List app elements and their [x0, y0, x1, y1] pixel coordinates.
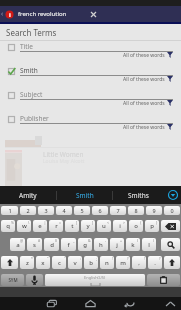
- staticText: ‹: [1, 9, 4, 19]
- button[interactable]: c: [52, 256, 66, 269]
- button[interactable]: t: [65, 220, 79, 232]
- staticText: #: [38, 238, 41, 243]
- staticText: =: [59, 220, 62, 225]
- staticText: All of these words: [123, 100, 165, 107]
- button[interactable]: More suggestions: [164, 186, 181, 204]
- button[interactable]: Publisher: [0, 114, 181, 124]
- staticText: +: [120, 238, 123, 243]
- staticText: ,: [138, 259, 140, 267]
- button[interactable]: w: [17, 220, 31, 232]
- button[interactable]: back: [161, 220, 180, 232]
- button[interactable]: shift: [1, 256, 18, 269]
- staticText: 0: [170, 207, 174, 214]
- button[interactable]: v: [68, 256, 82, 269]
- button[interactable]: r: [49, 220, 63, 232]
- button[interactable]: p: [145, 220, 159, 232]
- button[interactable]: k: [126, 238, 140, 251]
- staticText: ;: [96, 256, 97, 261]
- staticText: w: [22, 222, 27, 230]
- staticText: french revolution: [18, 10, 67, 18]
- button[interactable]: x: [36, 256, 50, 269]
- staticText: All of these words: [123, 76, 165, 83]
- staticText: v: [73, 259, 77, 267]
- button[interactable]: z: [20, 256, 34, 269]
- staticText: \: [28, 220, 30, 225]
- staticText: Title: [20, 42, 33, 51]
- button[interactable]: Hide keyboard: [159, 297, 181, 310]
- button[interactable]: h: [94, 238, 108, 251]
- button[interactable]: All of these words: [0, 124, 181, 138]
- button[interactable]: b: [84, 256, 98, 269]
- button[interactable]: u: [97, 220, 111, 232]
- staticText: b: [89, 259, 93, 267]
- staticText: k: [131, 241, 135, 249]
- button[interactable]: Title: [0, 42, 181, 52]
- button[interactable]: paste: [147, 274, 180, 286]
- button[interactable]: Amity: [0, 186, 56, 204]
- button[interactable]: y: [81, 220, 95, 232]
- button[interactable]: 5: [74, 206, 90, 215]
- button[interactable]: Home: [71, 297, 110, 310]
- button[interactable]: m: [116, 256, 130, 269]
- staticText: All of these words: [123, 52, 165, 59]
- button[interactable]: g: [78, 238, 92, 251]
- staticText: y: [86, 222, 90, 230]
- button[interactable]: 0: [164, 206, 180, 215]
- staticText: ?: [159, 256, 161, 261]
- button[interactable]: d: [44, 238, 59, 251]
- staticText: Little Women: [43, 150, 84, 159]
- button[interactable]: e: [33, 220, 47, 232]
- button[interactable]: f: [61, 238, 76, 251]
- staticText: 6: [98, 207, 102, 214]
- button[interactable]: 6: [92, 206, 108, 215]
- staticText: r: [55, 222, 58, 230]
- button[interactable]: 2: [20, 206, 36, 215]
- button[interactable]: 1: [1, 206, 18, 215]
- button[interactable]: j: [110, 238, 124, 251]
- button[interactable]: Info: [5, 10, 14, 19]
- staticText: $: [55, 238, 58, 243]
- button[interactable]: All of these words: [0, 76, 181, 90]
- button[interactable]: All of these words: [0, 52, 181, 66]
- button[interactable]: 3: [38, 206, 54, 215]
- staticText: Smiths: [128, 191, 149, 200]
- button[interactable]: .: [148, 256, 162, 269]
- button[interactable]: Smith: [57, 186, 112, 204]
- button[interactable]: a: [10, 238, 25, 251]
- staticText: f: [67, 241, 70, 249]
- staticText: 8: [134, 207, 138, 214]
- staticText: Smith: [20, 66, 38, 75]
- staticText: l: [148, 241, 150, 249]
- staticText: d: [50, 241, 54, 249]
- staticText: z: [26, 259, 29, 267]
- button[interactable]: shift: [164, 256, 180, 269]
- button[interactable]: q: [1, 220, 15, 232]
- button[interactable]: Subject: [0, 90, 181, 100]
- button[interactable]: mic: [26, 274, 43, 286]
- button[interactable]: Smiths: [113, 186, 164, 204]
- button[interactable]: Smith: [0, 66, 181, 76]
- button[interactable]: ,: [132, 256, 146, 269]
- button[interactable]: 7: [110, 206, 126, 215]
- button[interactable]: 4: [56, 206, 72, 215]
- button[interactable]: l: [142, 238, 156, 251]
- staticText: Amity: [19, 191, 37, 200]
- button[interactable]: SYM: [1, 274, 24, 286]
- button[interactable]: 8: [128, 206, 144, 215]
- button[interactable]: Recents: [32, 297, 71, 310]
- button[interactable]: i: [113, 220, 127, 232]
- button[interactable]: English(US): [45, 274, 145, 286]
- button[interactable]: Back: [110, 297, 149, 310]
- staticText: ": [47, 256, 49, 261]
- button[interactable]: 9: [146, 206, 162, 215]
- button[interactable]: Clear search: [86, 6, 100, 22]
- staticText: 9: [152, 207, 156, 214]
- staticText: Publisher: [20, 114, 49, 123]
- button[interactable]: All of these words: [0, 100, 181, 114]
- staticText: ?: [127, 256, 129, 261]
- button[interactable]: search: [161, 238, 180, 251]
- button[interactable]: s: [27, 238, 42, 251]
- button[interactable]: n: [100, 256, 114, 269]
- button[interactable]: o: [129, 220, 143, 232]
